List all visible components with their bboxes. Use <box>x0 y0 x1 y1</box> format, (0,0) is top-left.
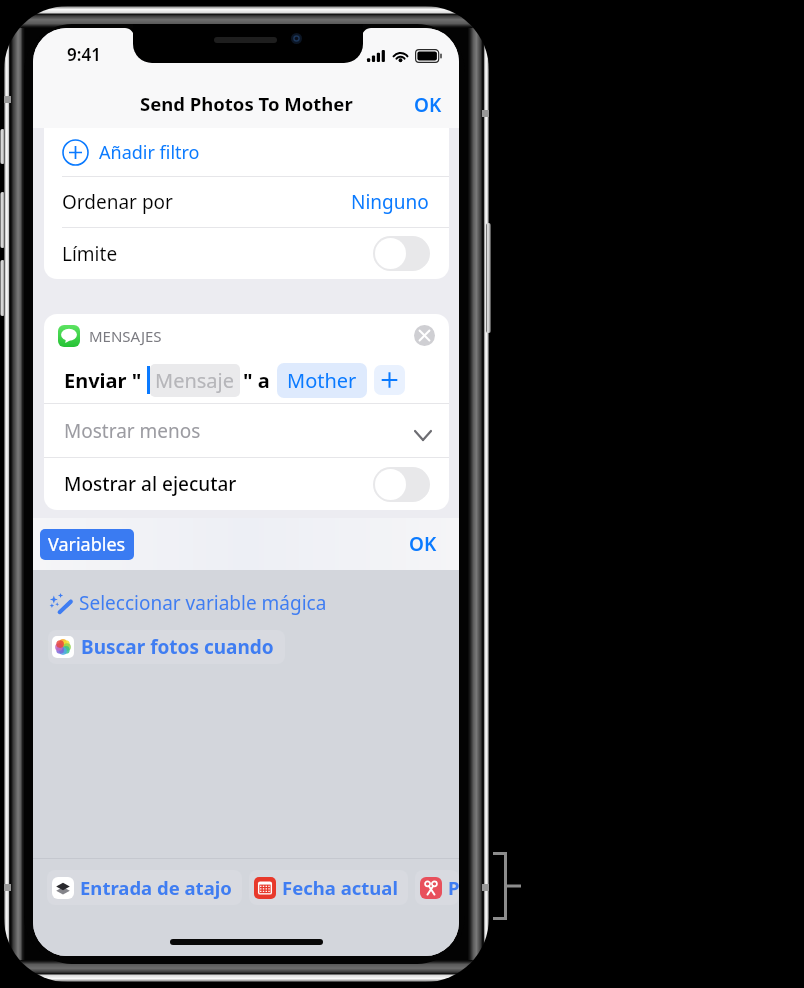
staticText: Variables <box>48 532 126 557</box>
staticText: Seleccionar variable mágica <box>79 590 327 616</box>
button[interactable]: Fecha actual <box>249 870 408 905</box>
button[interactable]: Activar <box>373 467 430 502</box>
button[interactable]: Mostrar menos <box>44 404 449 457</box>
staticText: Fecha actual <box>282 875 398 900</box>
button[interactable]: Añadir destinatario <box>374 365 405 395</box>
staticText: Mother <box>287 367 357 394</box>
staticText: Send Photos To Mother <box>140 91 353 116</box>
staticText: " a <box>243 367 270 394</box>
button[interactable]: Mother <box>277 363 367 398</box>
button[interactable]: Eliminar acción <box>414 325 435 346</box>
staticText: Añadir filtro <box>99 140 200 165</box>
button[interactable]: Seleccionar variable mágica <box>33 586 459 620</box>
staticText: Mostrar al ejecutar <box>64 471 237 497</box>
button[interactable]: OK <box>396 82 459 128</box>
staticText: Entrada de atajo <box>80 875 232 900</box>
staticText: Mostrar menos <box>64 418 201 444</box>
button[interactable]: Entrada de atajo <box>47 870 242 905</box>
button[interactable]: P <box>415 870 459 905</box>
staticText: Ninguno <box>351 189 429 215</box>
staticText: Buscar fotos cuando <box>81 634 274 660</box>
staticText: MENSAJES <box>89 326 162 346</box>
button[interactable]: Ordenar por <box>44 177 449 227</box>
button[interactable]: Buscar fotos cuando <box>48 630 285 664</box>
staticText: Ordenar por <box>62 189 173 215</box>
staticText: 9:41 <box>67 43 101 66</box>
button[interactable]: Añadir filtro <box>44 128 449 176</box>
button[interactable]: Variables <box>40 529 134 560</box>
staticText: OK <box>409 531 437 557</box>
button[interactable]: Activar <box>373 236 430 271</box>
staticText: OK <box>414 92 442 118</box>
button[interactable]: OK <box>387 521 459 567</box>
staticText: Enviar " <box>64 367 142 394</box>
staticText: Mensaje <box>155 367 235 394</box>
staticText: Límite <box>62 241 118 267</box>
